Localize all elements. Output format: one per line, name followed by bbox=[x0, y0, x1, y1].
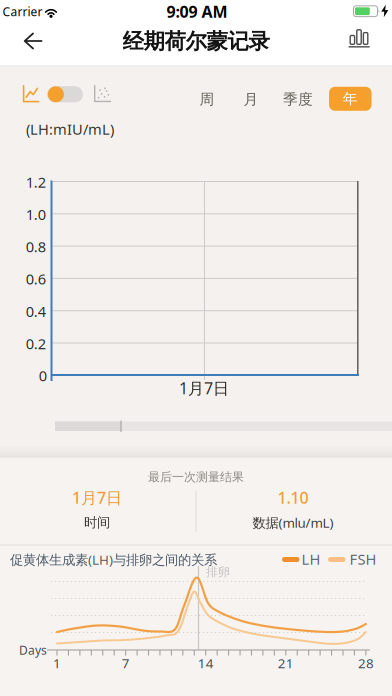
staticText: LH bbox=[301, 549, 320, 569]
staticText: 促黄体生成素(LH)与排卵之间的关系 bbox=[10, 551, 217, 568]
staticText: 14 bbox=[198, 654, 214, 672]
button[interactable]: 周 bbox=[189, 87, 225, 111]
staticText: 1.0 bbox=[26, 205, 46, 224]
staticText: 1月7日 bbox=[179, 377, 229, 399]
staticText: FSH bbox=[349, 549, 376, 569]
button[interactable]: Line chart bbox=[20, 83, 42, 105]
button[interactable]: 月 bbox=[233, 87, 269, 111]
staticText: 1.2 bbox=[26, 172, 46, 192]
staticText: 7 bbox=[122, 654, 130, 672]
staticText: 时间 bbox=[84, 514, 110, 531]
staticText: 9:09 AM bbox=[166, 1, 227, 22]
button[interactable]: Statistics bbox=[344, 25, 374, 55]
staticText: 0.8 bbox=[26, 237, 46, 256]
staticText: 排卵 bbox=[206, 565, 230, 579]
staticText: 21 bbox=[278, 654, 294, 672]
staticText: 月 bbox=[243, 90, 258, 108]
staticText: 0.6 bbox=[26, 269, 46, 289]
staticText: 0.2 bbox=[26, 334, 46, 353]
button[interactable]: 年 bbox=[329, 87, 372, 111]
staticText: 1 bbox=[53, 654, 61, 672]
button[interactable]: Chart type toggle bbox=[47, 85, 83, 104]
staticText: 季度 bbox=[283, 90, 313, 108]
staticText: 最后一次测量结果 bbox=[148, 470, 244, 484]
button[interactable]: Back bbox=[17, 26, 47, 56]
staticText: 1.10 bbox=[277, 487, 308, 508]
staticText: 0.4 bbox=[26, 301, 46, 321]
button[interactable]: 季度 bbox=[277, 87, 319, 111]
staticText: Carrier bbox=[3, 3, 43, 19]
staticText: 周 bbox=[199, 90, 214, 108]
staticText: (LH:mIU/mL) bbox=[26, 119, 114, 139]
staticText: 0 bbox=[39, 366, 47, 385]
staticText: 经期荷尔蒙记录 bbox=[122, 28, 269, 55]
staticText: 1月7日 bbox=[72, 487, 122, 508]
staticText: 数据(mlu/mL) bbox=[252, 514, 333, 531]
staticText: Days bbox=[19, 642, 47, 658]
button[interactable]: Scatter chart bbox=[94, 86, 111, 102]
staticText: 28 bbox=[358, 654, 374, 672]
staticText: 年 bbox=[343, 90, 358, 108]
